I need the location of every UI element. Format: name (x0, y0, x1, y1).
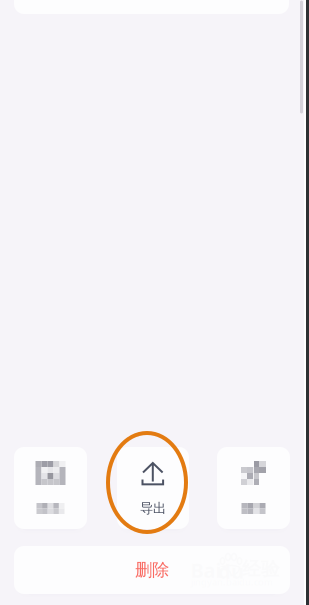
staticText: 导出 (140, 500, 166, 516)
button[interactable]: Option (14, 447, 87, 529)
button[interactable]: 删除 (14, 546, 290, 594)
staticText: 删除 (135, 559, 169, 581)
button[interactable]: Option (217, 447, 290, 529)
button[interactable]: 导出 (117, 447, 189, 529)
